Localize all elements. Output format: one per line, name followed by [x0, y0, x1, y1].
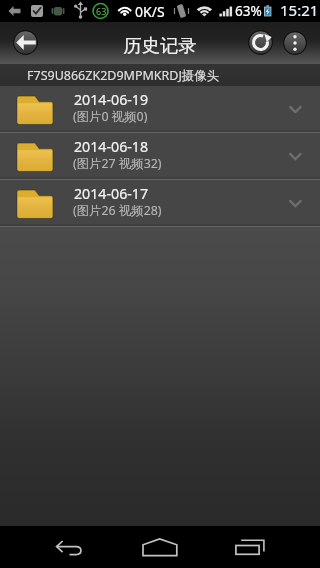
staticText: 2014-06-19: [74, 90, 149, 109]
staticText: (图片27 视频32): [73, 155, 162, 172]
button[interactable]: Recent apps: [228, 534, 274, 560]
staticText: 2014-06-17: [74, 184, 149, 203]
staticText: 15:21: [280, 0, 319, 20]
staticText: F7S9U866ZK2D9MPMKRDJ摄像头: [27, 67, 220, 84]
staticText: 历史记录: [0, 34, 320, 57]
button[interactable]: Home: [137, 534, 183, 560]
staticText: 2014-06-18: [74, 137, 149, 156]
button[interactable]: Back: [13, 30, 38, 55]
staticText: (图片26 视频28): [73, 202, 162, 219]
staticText: 63: [96, 5, 107, 17]
button[interactable]: 2014-06-19: [0, 86, 320, 133]
button[interactable]: More options: [283, 31, 307, 55]
button[interactable]: 2014-06-17: [0, 180, 320, 227]
staticText: (图片0 视频0): [73, 108, 148, 125]
staticText: 63%: [235, 1, 262, 20]
button[interactable]: Refresh: [248, 30, 273, 55]
staticText: 0K/S: [135, 2, 165, 21]
button[interactable]: Back: [48, 534, 94, 560]
button[interactable]: 2014-06-18: [0, 133, 320, 180]
